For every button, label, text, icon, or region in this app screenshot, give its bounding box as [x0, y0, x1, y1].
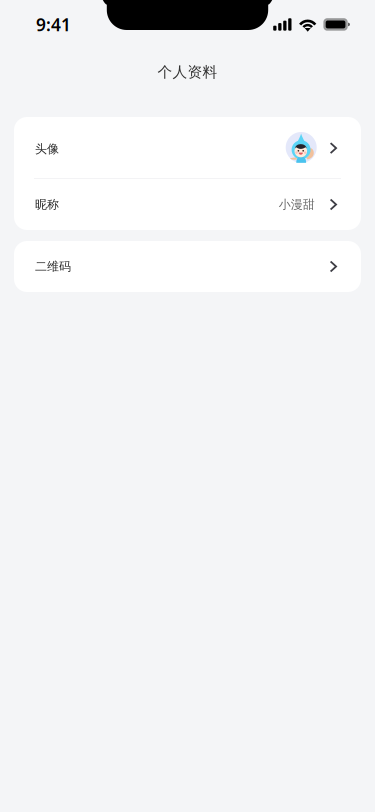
staticText: 个人资料: [157, 63, 217, 81]
staticText: 小漫甜: [279, 197, 315, 212]
staticText: 二维码: [35, 259, 71, 274]
staticText: 9:41: [36, 13, 71, 36]
staticText: 昵称: [35, 197, 59, 212]
button[interactable]: 二维码: [14, 241, 361, 292]
staticText: 头像: [35, 142, 59, 156]
button[interactable]: 头像: [14, 117, 361, 178]
button[interactable]: 昵称: [14, 179, 361, 230]
